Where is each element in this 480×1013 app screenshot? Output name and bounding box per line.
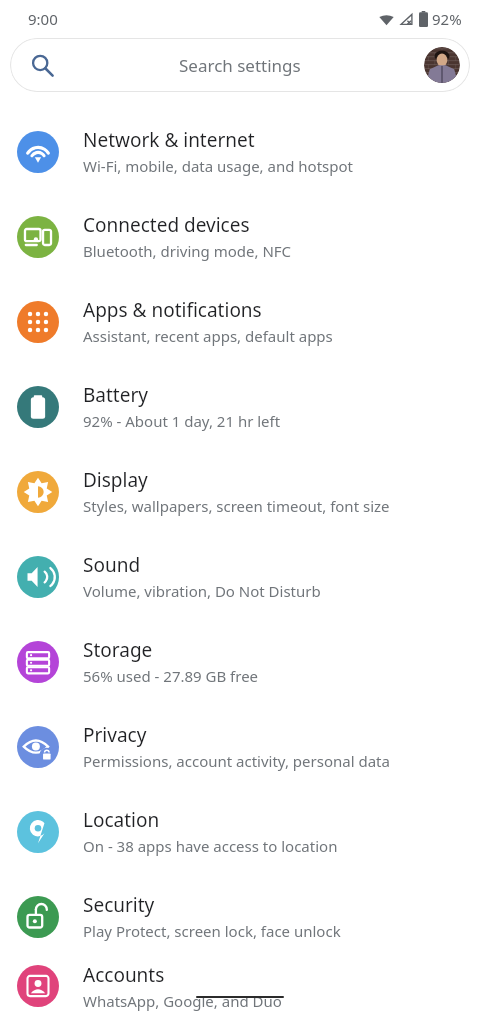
- button[interactable]: Sound: [0, 534, 480, 619]
- staticText: Network & internet: [83, 127, 255, 153]
- staticText: Display: [83, 467, 148, 493]
- staticText: Bluetooth, driving mode, NFC: [83, 241, 292, 261]
- button[interactable]: Display: [0, 449, 480, 534]
- button[interactable]: Network & internet: [0, 109, 480, 194]
- button[interactable]: Security: [0, 874, 480, 959]
- button[interactable]: Apps & notifications: [0, 279, 480, 364]
- other: Search: [31, 54, 54, 77]
- staticText: On - 38 apps have access to location: [83, 836, 338, 856]
- staticText: 56% used - 27.89 GB free: [83, 666, 259, 686]
- staticText: Permissions, account activity, personal …: [83, 751, 390, 771]
- button[interactable]: Storage: [0, 619, 480, 704]
- staticText: Connected devices: [83, 212, 250, 238]
- staticText: Wi-Fi, mobile, data usage, and hotspot: [83, 156, 353, 176]
- staticText: Privacy: [83, 722, 147, 748]
- button[interactable]: Search: [10, 38, 470, 92]
- button[interactable]: Accounts: [0, 959, 480, 1013]
- button[interactable]: Account: [424, 47, 460, 83]
- staticText: WhatsApp, Google, and Duo: [83, 991, 282, 1011]
- staticText: Play Protect, screen lock, face unlock: [83, 921, 341, 941]
- staticText: Security: [83, 892, 155, 918]
- staticText: 92% - About 1 day, 21 hr left: [83, 411, 281, 431]
- button[interactable]: Privacy: [0, 704, 480, 789]
- staticText: Sound: [83, 552, 141, 578]
- staticText: Battery: [83, 382, 148, 408]
- staticText: Volume, vibration, Do Not Disturb: [83, 581, 321, 601]
- button[interactable]: Battery: [0, 364, 480, 449]
- staticText: Storage: [83, 637, 153, 663]
- staticText: Apps & notifications: [83, 297, 262, 323]
- staticText: Accounts: [83, 962, 165, 988]
- staticText: Assistant, recent apps, default apps: [83, 326, 333, 346]
- staticText: 9:00: [28, 9, 58, 29]
- staticText: Search settings: [179, 54, 301, 77]
- staticText: Styles, wallpapers, screen timeout, font…: [83, 496, 390, 516]
- staticText: Location: [83, 807, 160, 833]
- button[interactable]: Location: [0, 789, 480, 874]
- button[interactable]: Connected devices: [0, 194, 480, 279]
- staticText: 92%: [432, 9, 462, 29]
